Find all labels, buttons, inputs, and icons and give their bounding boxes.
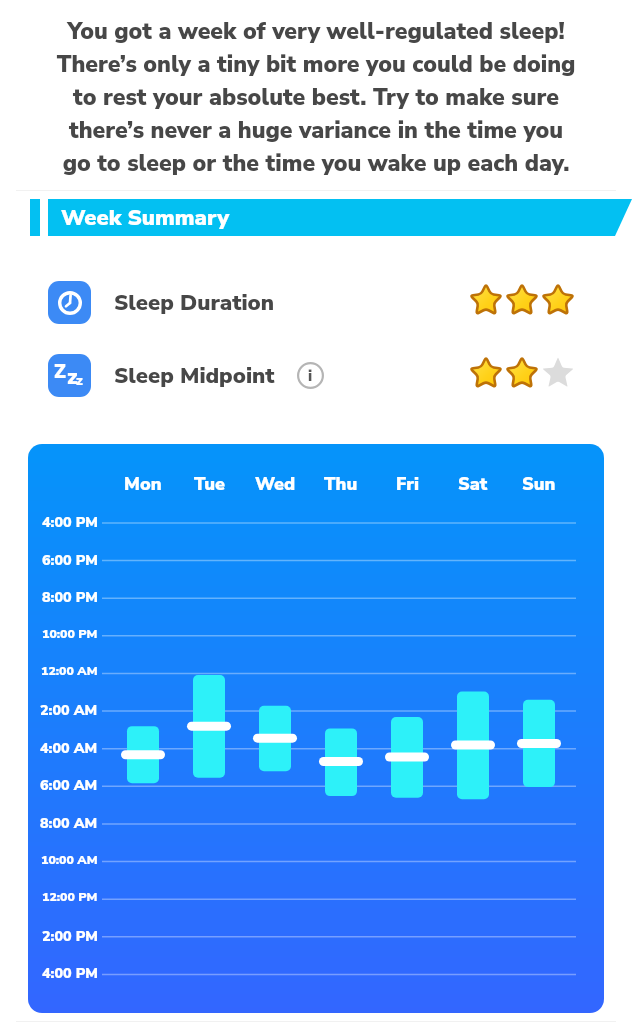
staticText: 4:00 PM (42, 964, 98, 984)
staticText: You got a week of very well-regulated sl… (52, 16, 580, 180)
staticText: Mon (124, 472, 162, 497)
staticText: Fri (396, 472, 419, 497)
staticText: Thu (324, 472, 358, 497)
staticText: 2:00 PM (42, 927, 98, 947)
staticText: 8:00 AM (40, 814, 98, 834)
staticText: 6:00 PM (42, 551, 98, 571)
staticText: 6:00 AM (40, 776, 98, 796)
button[interactable]: More information (297, 362, 324, 389)
staticText: 10:00 PM (42, 626, 98, 643)
staticText: Week Summary (61, 203, 229, 233)
button[interactable]: Week Summary (0, 199, 632, 236)
staticText: Sun (522, 472, 556, 497)
staticText: z (67, 362, 78, 392)
staticText: 12:00 AM (41, 663, 98, 680)
button[interactable]: Sleep Duration (48, 281, 575, 324)
staticText: 4:00 PM (42, 513, 98, 533)
staticText: Wed (255, 472, 296, 497)
staticText: Z (54, 359, 66, 385)
staticText: Sleep Midpoint (114, 361, 275, 391)
staticText: Tue (194, 472, 225, 497)
staticText: Sleep Duration (114, 288, 275, 318)
staticText: 8:00 PM (42, 588, 98, 608)
staticText: 12:00 PM (42, 889, 98, 906)
staticText: 2:00 AM (40, 701, 98, 721)
staticText: Sat (458, 472, 488, 497)
staticText: i (308, 366, 313, 386)
staticText: 10:00 AM (41, 852, 98, 869)
staticText: z (76, 371, 83, 390)
button[interactable]: Z (48, 354, 575, 397)
staticText: 4:00 AM (40, 739, 98, 759)
